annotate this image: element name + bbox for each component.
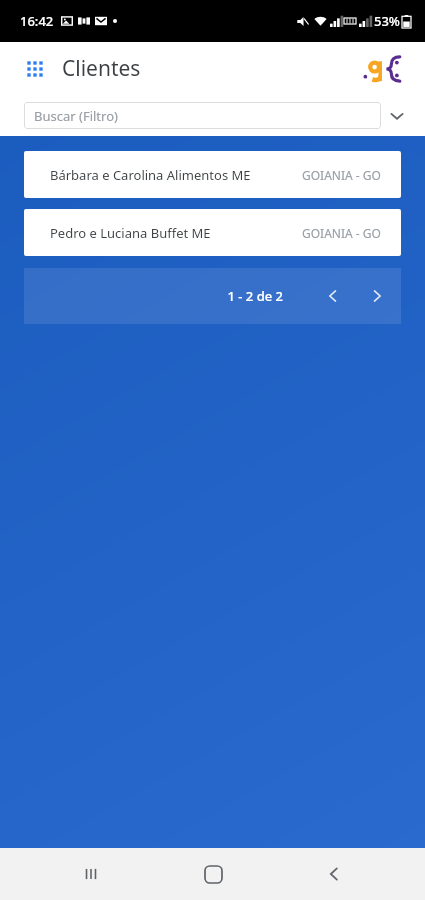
button[interactable]: Recentes (61, 848, 121, 900)
staticText: Clientes (62, 54, 141, 83)
staticText: 1 - 2 de 2 (227, 287, 283, 305)
button[interactable]: Pedro e Luciana Buffet ME (24, 209, 401, 256)
button[interactable]: Apps menu (20, 54, 50, 84)
staticText: Buscar (Filtro) (34, 107, 118, 125)
button[interactable]: Início (183, 848, 243, 900)
staticText: GOIANIA - GO (302, 167, 381, 183)
button[interactable]: Próxima página (359, 278, 395, 314)
button[interactable]: Buscar (Filtro) (24, 102, 381, 129)
button[interactable]: Logo (361, 52, 405, 86)
staticText: Bárbara e Carolina Alimentos ME (50, 166, 251, 184)
button[interactable]: Página anterior (315, 278, 351, 314)
button[interactable]: Bárbara e Carolina Alimentos ME (24, 151, 401, 198)
staticText: 16:42 (20, 12, 54, 30)
staticText: Pedro e Luciana Buffet ME (50, 224, 211, 242)
button[interactable]: Expandir filtros (381, 100, 413, 132)
staticText: GOIANIA - GO (302, 225, 381, 241)
staticText: 53% (374, 12, 400, 30)
button[interactable]: Voltar (304, 848, 364, 900)
